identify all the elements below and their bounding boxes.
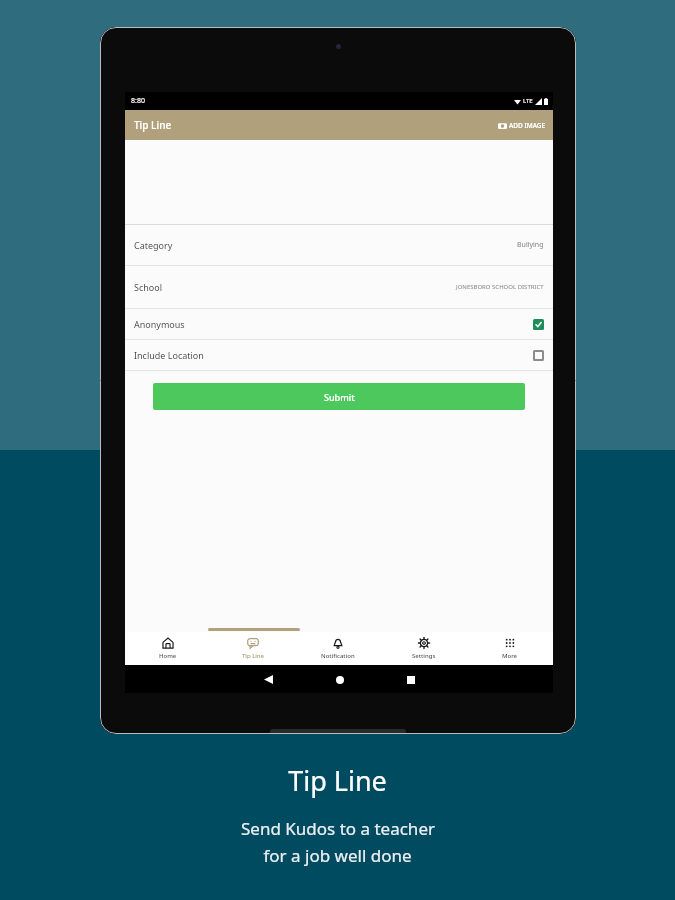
staticText: Settings	[412, 652, 436, 660]
staticText: More	[502, 652, 518, 660]
button[interactable]: More	[467, 632, 553, 665]
button[interactable]: Home	[125, 632, 210, 665]
staticText: Tip Line	[134, 118, 172, 132]
staticText: Category	[134, 239, 173, 251]
staticText: for a job well done	[263, 844, 412, 867]
button[interactable]: Anonymous	[125, 309, 553, 340]
staticText: Send Kudos to a teacher	[241, 817, 435, 840]
staticText: Home	[159, 652, 177, 660]
button[interactable]: Category	[125, 225, 553, 266]
staticText: ADD IMAGE	[509, 121, 546, 130]
staticText: Bullying	[517, 240, 544, 250]
button[interactable]: Notification	[295, 632, 381, 665]
other: Home	[336, 676, 344, 684]
button[interactable]: School	[125, 266, 553, 309]
button[interactable]: Submit	[153, 383, 525, 410]
button[interactable]: Settings	[381, 632, 467, 665]
other: Back	[264, 675, 273, 684]
staticText: JONESBORO SCHOOL DISTRICT	[456, 283, 544, 291]
staticText: Include Location	[134, 349, 204, 361]
button[interactable]: Add image	[491, 117, 553, 134]
button[interactable]: Tip Line	[210, 632, 295, 665]
staticText: 8:80	[131, 96, 145, 106]
staticText: School	[134, 281, 163, 293]
staticText: Submit	[324, 391, 355, 403]
staticText: Anonymous	[134, 318, 185, 330]
staticText: LTE	[523, 97, 533, 105]
staticText: Tip Line	[242, 652, 264, 660]
button[interactable]: Include Location	[125, 340, 553, 371]
staticText: Tip Line	[288, 762, 387, 799]
staticText: Notification	[321, 652, 355, 660]
